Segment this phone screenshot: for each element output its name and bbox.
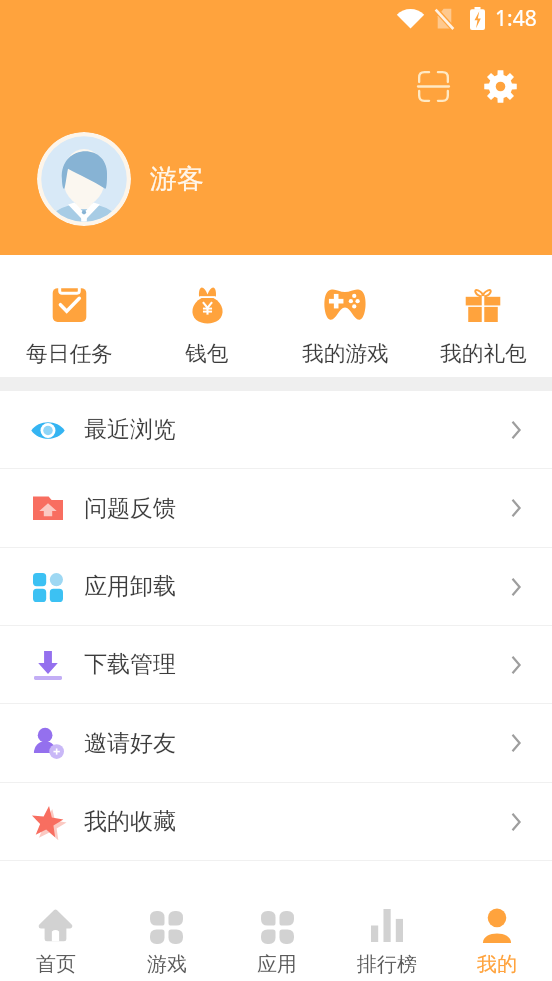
button[interactable]: 我的收藏	[0, 783, 552, 860]
button[interactable]: 问题反馈	[0, 469, 552, 547]
button[interactable]: 钱包	[138, 255, 276, 377]
staticText: 下载管理	[84, 650, 176, 679]
staticText: 应用	[257, 952, 297, 977]
staticText: 我的	[477, 952, 517, 977]
button[interactable]: 游客	[37, 132, 552, 226]
staticText: 排行榜	[357, 952, 417, 977]
staticText: 我的收藏	[84, 807, 176, 836]
button[interactable]: 我的	[442, 861, 552, 981]
staticText: 问题反馈	[84, 494, 176, 523]
button[interactable]: 邀请好友	[0, 704, 552, 782]
staticText: 游戏	[147, 952, 187, 977]
button[interactable]: Scan QR code	[407, 60, 459, 112]
staticText: 游客	[150, 162, 204, 196]
staticText: 每日任务	[26, 340, 113, 367]
button[interactable]: Settings	[474, 60, 526, 112]
button[interactable]: 排行榜	[332, 861, 442, 981]
button[interactable]: 应用	[222, 861, 332, 981]
staticText: 钱包	[185, 340, 229, 367]
button[interactable]: 我的礼包	[414, 255, 552, 377]
staticText: 邀请好友	[84, 729, 176, 758]
button[interactable]: 最近浏览	[0, 391, 552, 468]
button[interactable]: 我的游戏	[276, 255, 414, 377]
staticText: 我的礼包	[440, 340, 527, 367]
button[interactable]: 应用卸载	[0, 548, 552, 625]
staticText: 1:48	[495, 4, 537, 33]
button[interactable]: 每日任务	[0, 255, 138, 377]
staticText: 我的游戏	[302, 340, 389, 367]
button[interactable]: 下载管理	[0, 626, 552, 703]
button[interactable]: 游戏	[111, 861, 222, 981]
staticText: 首页	[36, 952, 76, 977]
staticText: 最近浏览	[84, 415, 176, 444]
staticText: 应用卸载	[84, 572, 176, 601]
button[interactable]: 首页	[0, 861, 111, 981]
